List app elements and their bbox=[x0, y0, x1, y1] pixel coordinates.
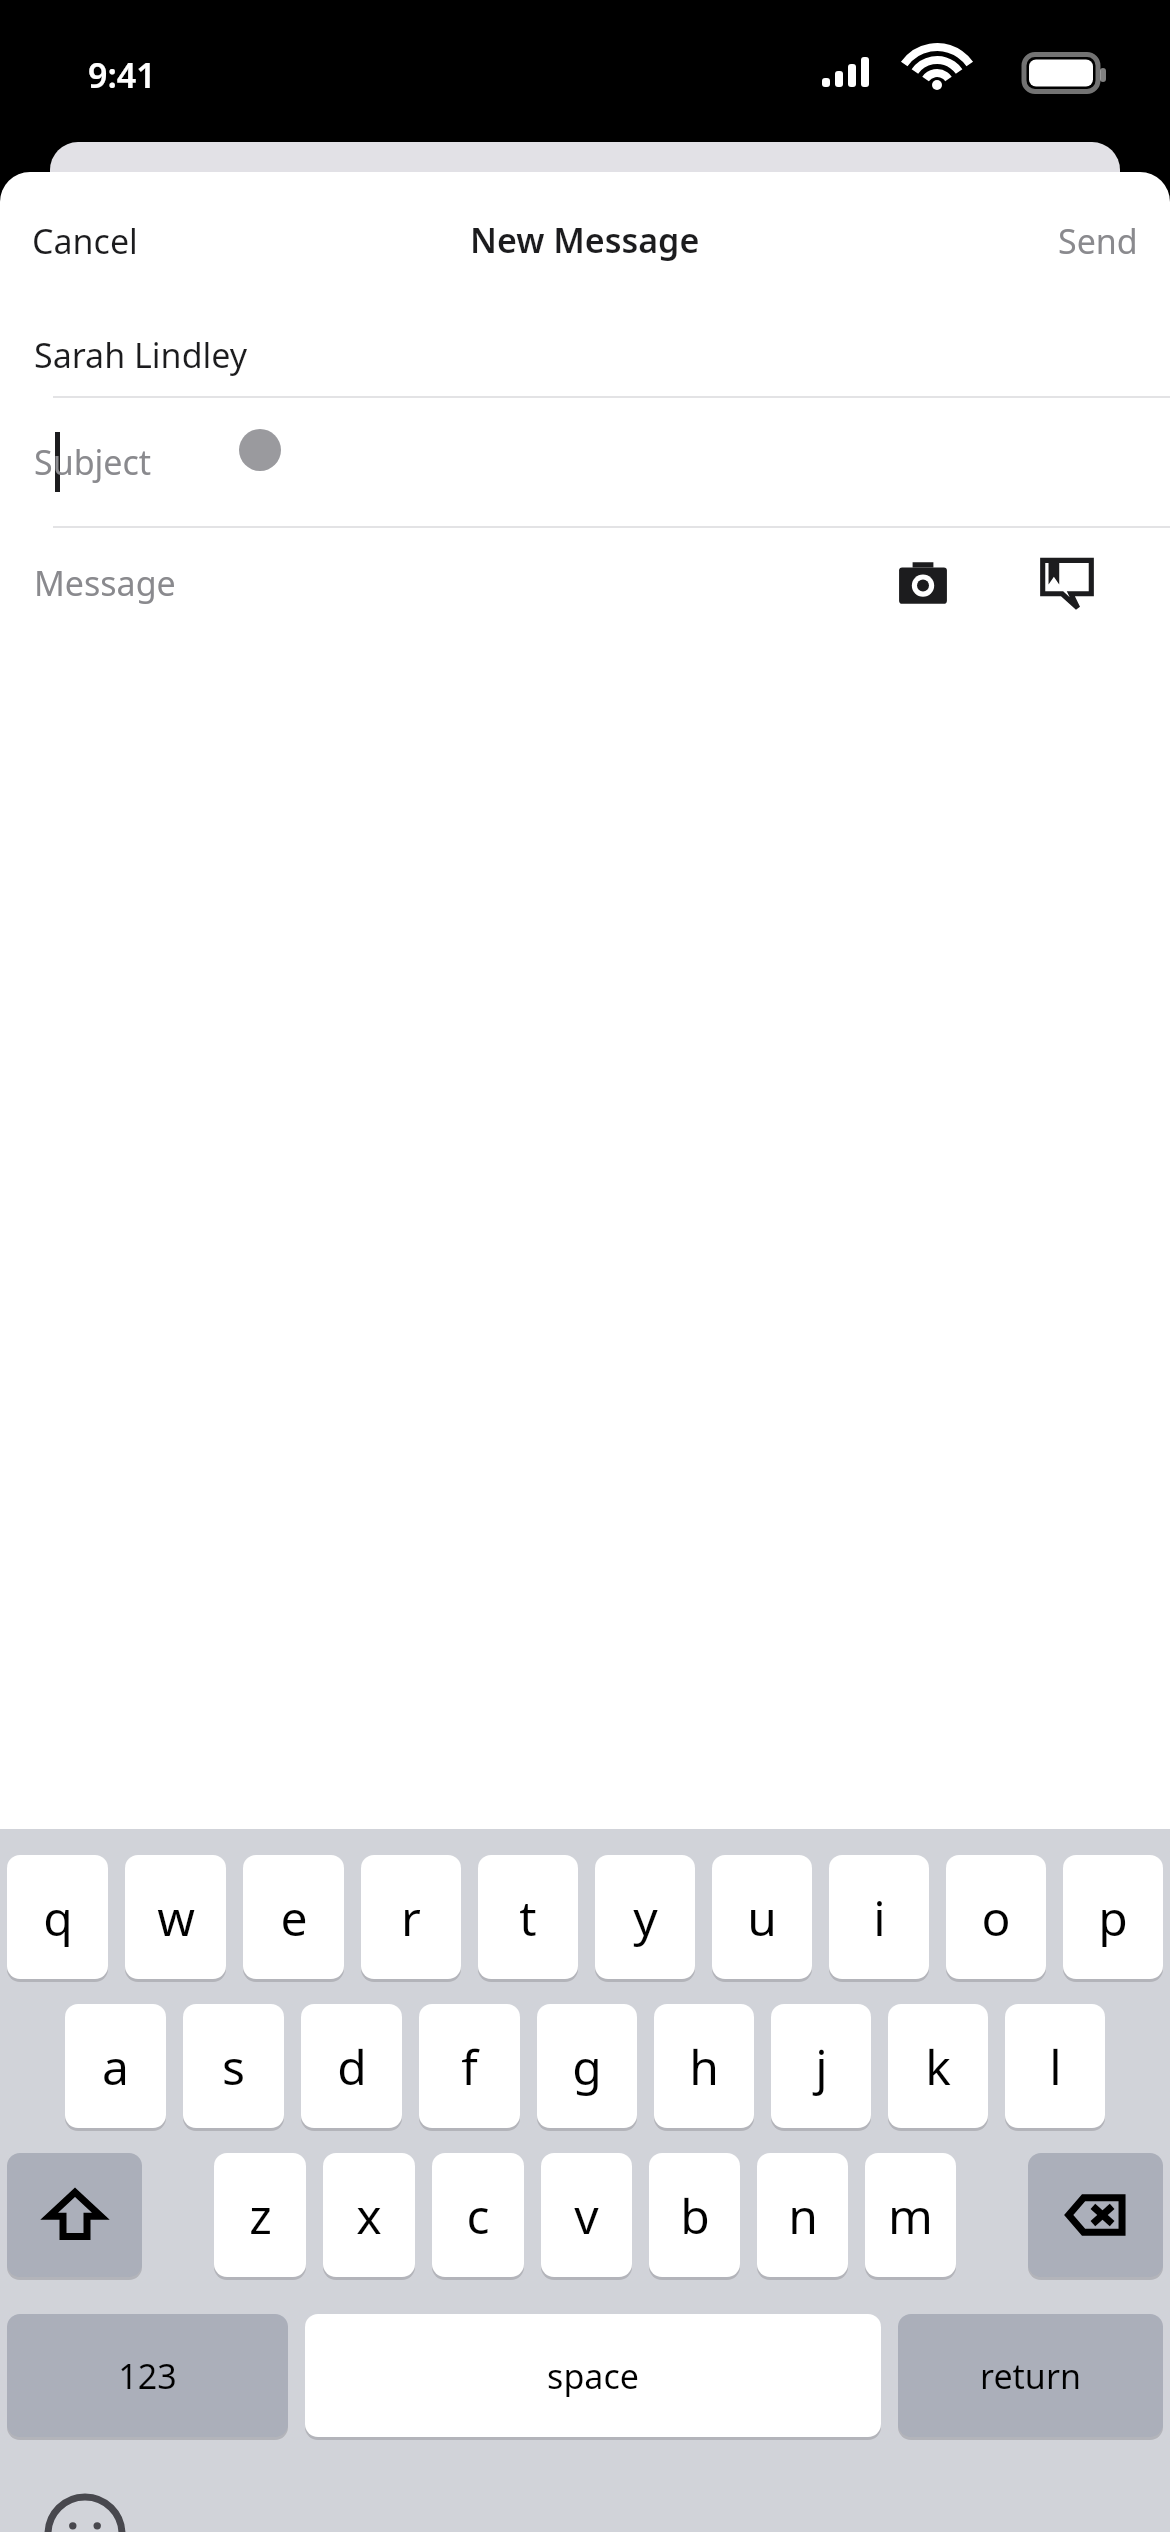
button[interactable]: Insert sticker bbox=[1034, 550, 1100, 616]
staticText: j bbox=[815, 2034, 828, 2099]
button[interactable]: x bbox=[323, 2153, 415, 2277]
button[interactable]: space bbox=[305, 2314, 881, 2437]
button[interactable]: Subject bbox=[0, 398, 1170, 526]
staticText: w bbox=[157, 1885, 195, 1950]
button[interactable]: o bbox=[946, 1855, 1046, 1979]
staticText: s bbox=[222, 2034, 245, 2099]
staticText: r bbox=[401, 1885, 421, 1950]
staticText: k bbox=[925, 2034, 951, 2099]
staticText: g bbox=[572, 2034, 602, 2099]
button[interactable]: g bbox=[537, 2004, 637, 2128]
staticText: 123 bbox=[118, 2353, 177, 2399]
staticText: z bbox=[249, 2183, 272, 2248]
button[interactable]: Cancel bbox=[0, 210, 170, 270]
button[interactable]: b bbox=[649, 2153, 740, 2277]
staticText: 9:41 bbox=[88, 52, 156, 98]
button[interactable]: u bbox=[712, 1855, 812, 1979]
staticText: Cancel bbox=[32, 218, 138, 262]
staticText: v bbox=[574, 2183, 599, 2248]
staticText: Sarah Lindley bbox=[34, 332, 248, 378]
staticText: a bbox=[102, 2034, 129, 2099]
staticText: p bbox=[1098, 1885, 1128, 1950]
button[interactable]: h bbox=[654, 2004, 754, 2128]
staticText: q bbox=[43, 1885, 73, 1950]
staticText: b bbox=[680, 2183, 710, 2248]
staticText: d bbox=[337, 2034, 367, 2099]
button[interactable]: n bbox=[757, 2153, 848, 2277]
button[interactable]: Emoji keyboard bbox=[40, 2489, 130, 2532]
staticText: h bbox=[689, 2034, 719, 2099]
staticText: return bbox=[980, 2353, 1081, 2399]
button[interactable]: j bbox=[771, 2004, 871, 2128]
staticText: i bbox=[873, 1885, 886, 1950]
button[interactable]: e bbox=[243, 1855, 344, 1979]
staticText: space bbox=[547, 2353, 639, 2399]
button[interactable]: f bbox=[419, 2004, 520, 2128]
button[interactable]: k bbox=[888, 2004, 988, 2128]
button[interactable]: i bbox=[829, 1855, 929, 1979]
button[interactable]: a bbox=[65, 2004, 166, 2128]
button[interactable]: d bbox=[301, 2004, 402, 2128]
button[interactable]: Shift bbox=[7, 2153, 142, 2277]
button[interactable]: l bbox=[1005, 2004, 1105, 2128]
button[interactable]: Backspace bbox=[1028, 2153, 1163, 2277]
button[interactable]: t bbox=[478, 1855, 578, 1979]
button[interactable]: m bbox=[865, 2153, 956, 2277]
button[interactable]: 123 bbox=[7, 2314, 288, 2437]
button[interactable]: c bbox=[432, 2153, 524, 2277]
button[interactable]: p bbox=[1063, 1855, 1163, 1979]
staticText: x bbox=[356, 2183, 382, 2248]
button[interactable]: y bbox=[595, 1855, 695, 1979]
button[interactable]: Sarah Lindley bbox=[0, 314, 1170, 396]
staticText: New Message bbox=[470, 217, 700, 263]
button[interactable]: r bbox=[361, 1855, 461, 1979]
button[interactable]: q bbox=[7, 1855, 108, 1979]
button[interactable]: w bbox=[125, 1855, 226, 1979]
staticText: m bbox=[888, 2183, 933, 2248]
staticText: Message bbox=[34, 560, 176, 606]
button[interactable]: z bbox=[214, 2153, 306, 2277]
staticText: Subject bbox=[34, 439, 152, 485]
staticText: c bbox=[466, 2183, 490, 2248]
staticText: t bbox=[519, 1885, 537, 1950]
button[interactable]: s bbox=[183, 2004, 284, 2128]
staticText: l bbox=[1049, 2034, 1062, 2099]
staticText: f bbox=[461, 2034, 478, 2099]
staticText: u bbox=[747, 1885, 777, 1950]
staticText: y bbox=[633, 1885, 658, 1950]
staticText: o bbox=[981, 1885, 1011, 1950]
button[interactable]: Send bbox=[1026, 210, 1170, 270]
staticText: e bbox=[280, 1885, 308, 1950]
button[interactable]: return bbox=[898, 2314, 1163, 2437]
staticText: n bbox=[788, 2183, 818, 2248]
button[interactable]: v bbox=[541, 2153, 632, 2277]
staticText: Send bbox=[1058, 218, 1138, 262]
button[interactable]: Insert photo bbox=[890, 550, 956, 616]
